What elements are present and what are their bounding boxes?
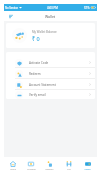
button[interactable]: Pay — [59, 157, 78, 174]
staticText: Privilege — [27, 168, 36, 171]
staticText: 4:03 PM — [47, 6, 58, 10]
staticText: Redeem — [29, 72, 41, 76]
button[interactable]: Home — [4, 157, 22, 174]
staticText: Wallet — [45, 14, 56, 19]
button[interactable]: Redeem — [40, 157, 59, 174]
staticText: Redeem — [45, 168, 54, 171]
button[interactable]: Privilege — [22, 157, 40, 174]
button[interactable]: Verify email — [6, 90, 95, 99]
staticText: 57% — [84, 6, 90, 10]
staticText: Pay — [67, 168, 71, 171]
staticText: Wallet — [84, 168, 91, 171]
staticText: No Service — [5, 6, 18, 10]
button[interactable]: Menu — [6, 12, 15, 21]
staticText: Home — [10, 168, 16, 171]
button[interactable]: Wallet — [78, 157, 97, 174]
button[interactable]: Redeem — [6, 68, 95, 79]
staticText: My Wallet Balance — [32, 30, 57, 34]
button[interactable]: My Wallet Balance — [6, 23, 95, 48]
staticText: Activate Code — [29, 61, 49, 65]
staticText: Verify email — [29, 93, 46, 97]
staticText: ₹ 0 — [32, 35, 40, 42]
button[interactable]: Account Statement — [6, 79, 95, 90]
staticText: Account Statement — [29, 83, 56, 87]
button[interactable]: Activate Code — [6, 57, 95, 68]
